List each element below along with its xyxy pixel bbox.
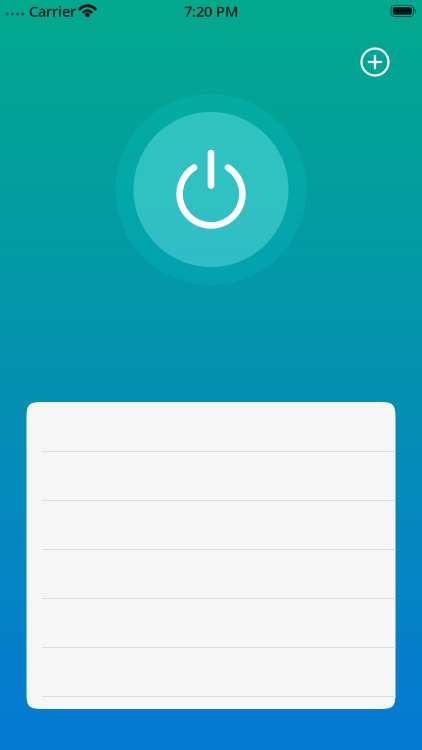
button[interactable] — [26, 451, 395, 500]
button[interactable] — [26, 549, 395, 598]
button[interactable] — [26, 598, 395, 647]
button[interactable] — [26, 647, 395, 696]
button[interactable]: Add device — [353, 40, 397, 84]
button[interactable] — [26, 402, 395, 451]
button[interactable] — [26, 696, 395, 709]
staticText: Carrier — [29, 1, 76, 21]
button[interactable] — [26, 500, 395, 549]
staticText: 7:20 PM — [184, 1, 238, 21]
button[interactable]: Power — [115, 94, 306, 285]
